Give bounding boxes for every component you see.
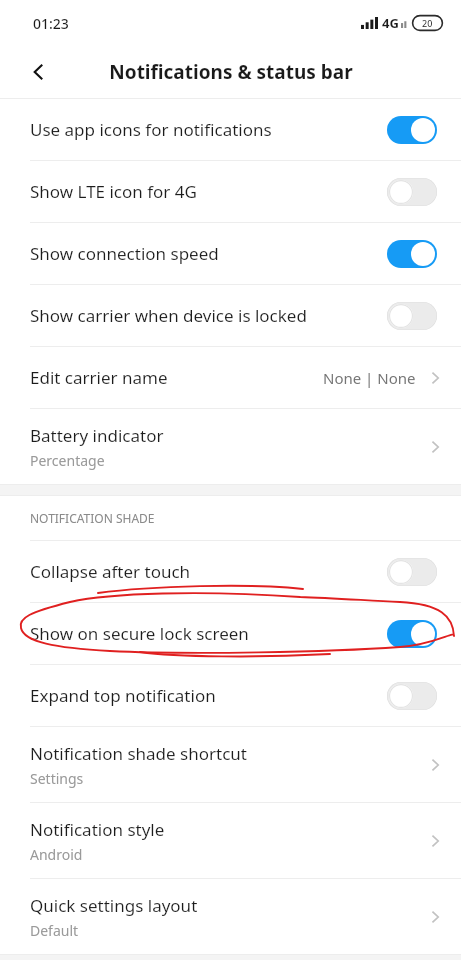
staticText: Expand top notification	[30, 684, 387, 707]
button[interactable]: Edit carrier name	[0, 347, 461, 408]
button[interactable]: Show carrier when device is locked	[0, 285, 461, 346]
staticText: 4G	[382, 14, 399, 32]
button[interactable]: Show LTE icon for 4G	[0, 161, 461, 222]
staticText: None | None	[323, 368, 416, 388]
staticText: Show carrier when device is locked	[30, 304, 387, 327]
staticText: Notification style	[30, 818, 165, 841]
button[interactable]: Notification shade shortcut	[0, 727, 461, 802]
staticText: Battery indicator	[30, 424, 164, 447]
button[interactable]: Notification style	[0, 803, 461, 878]
button[interactable]: Use app icons for notifications	[0, 99, 461, 160]
button[interactable]: Show on secure lock screen	[0, 603, 461, 664]
staticText: Collapse after touch	[30, 560, 387, 583]
button[interactable]: Back	[18, 51, 60, 93]
staticText: Default	[30, 921, 79, 940]
staticText: Edit carrier name	[30, 366, 323, 389]
button[interactable]: Battery indicator	[0, 409, 461, 484]
button[interactable]: Show connection speed	[0, 223, 461, 284]
staticText: Notifications & status bar	[109, 59, 353, 85]
staticText: NOTIFICATION SHADE	[30, 510, 155, 526]
staticText: Notification shade shortcut	[30, 742, 247, 765]
staticText: 01:23	[33, 14, 69, 33]
staticText: Settings	[30, 769, 84, 788]
staticText: Show connection speed	[30, 242, 387, 265]
staticText: Show LTE icon for 4G	[30, 180, 387, 203]
button[interactable]: Quick settings layout	[0, 879, 461, 954]
staticText: Show on secure lock screen	[30, 622, 387, 645]
button[interactable]: Collapse after touch	[0, 541, 461, 602]
staticText: Percentage	[30, 451, 105, 470]
staticText: 20	[422, 17, 433, 29]
staticText: Use app icons for notifications	[30, 118, 387, 141]
staticText: Quick settings layout	[30, 894, 198, 917]
staticText: Android	[30, 845, 83, 864]
button[interactable]: Expand top notification	[0, 665, 461, 726]
